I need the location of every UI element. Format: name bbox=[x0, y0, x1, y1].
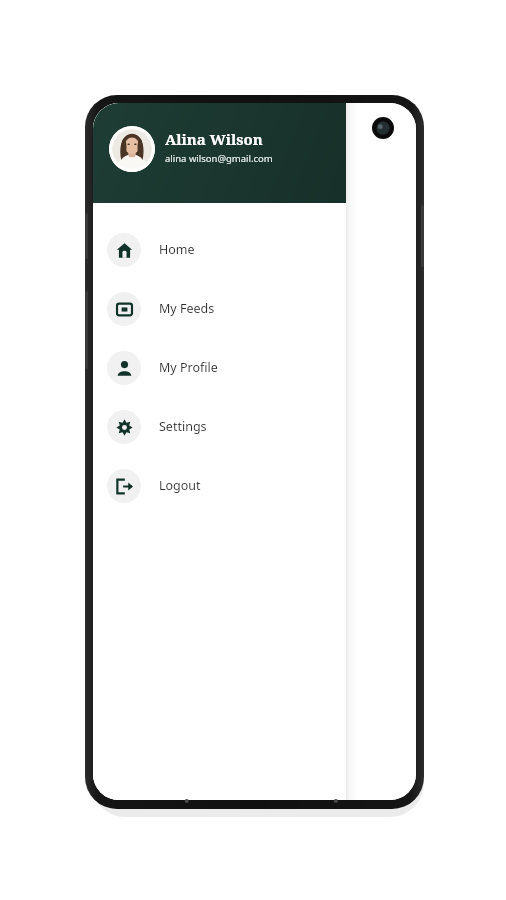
button[interactable]: Alina Wilson bbox=[93, 103, 346, 203]
staticText: Settings bbox=[159, 418, 207, 435]
button[interactable]: Settings bbox=[93, 397, 346, 456]
button[interactable]: Home bbox=[93, 220, 346, 279]
staticText: Home bbox=[159, 241, 195, 258]
staticText: My Feeds bbox=[159, 300, 215, 317]
button[interactable]: My Feeds bbox=[93, 279, 346, 338]
staticText: Logout bbox=[159, 477, 201, 494]
button[interactable]: Logout bbox=[93, 456, 346, 515]
button[interactable]: My Profile bbox=[93, 338, 346, 397]
staticText: My Profile bbox=[159, 359, 218, 376]
staticText: alina wilson@gmail.com bbox=[165, 152, 273, 165]
staticText: Alina Wilson bbox=[165, 129, 263, 149]
